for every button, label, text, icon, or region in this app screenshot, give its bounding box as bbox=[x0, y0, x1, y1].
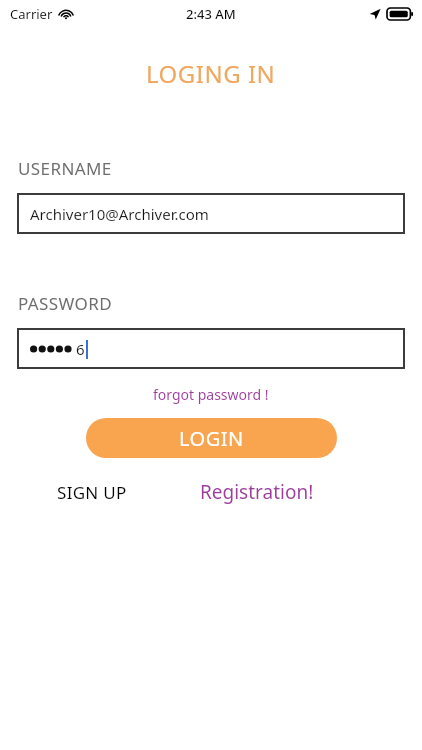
button[interactable]: 6 bbox=[17, 328, 405, 369]
staticText: PASSWORD bbox=[18, 292, 113, 315]
staticText: 6 bbox=[76, 339, 85, 359]
staticText: Carrier bbox=[10, 5, 53, 23]
staticText: LOGIN bbox=[179, 425, 244, 452]
button[interactable]: LOGIN bbox=[86, 418, 337, 458]
button[interactable]: SIGN UP bbox=[57, 481, 127, 504]
button[interactable]: Registration! bbox=[200, 479, 314, 505]
button[interactable]: Archiver10@Archiver.com bbox=[17, 193, 405, 234]
staticText: Archiver10@Archiver.com bbox=[30, 204, 209, 224]
staticText: USERNAME bbox=[18, 157, 112, 180]
staticText: LOGING IN bbox=[146, 57, 276, 90]
button[interactable]: forgot password ! bbox=[149, 383, 273, 406]
staticText: 2:43 AM bbox=[186, 5, 236, 23]
